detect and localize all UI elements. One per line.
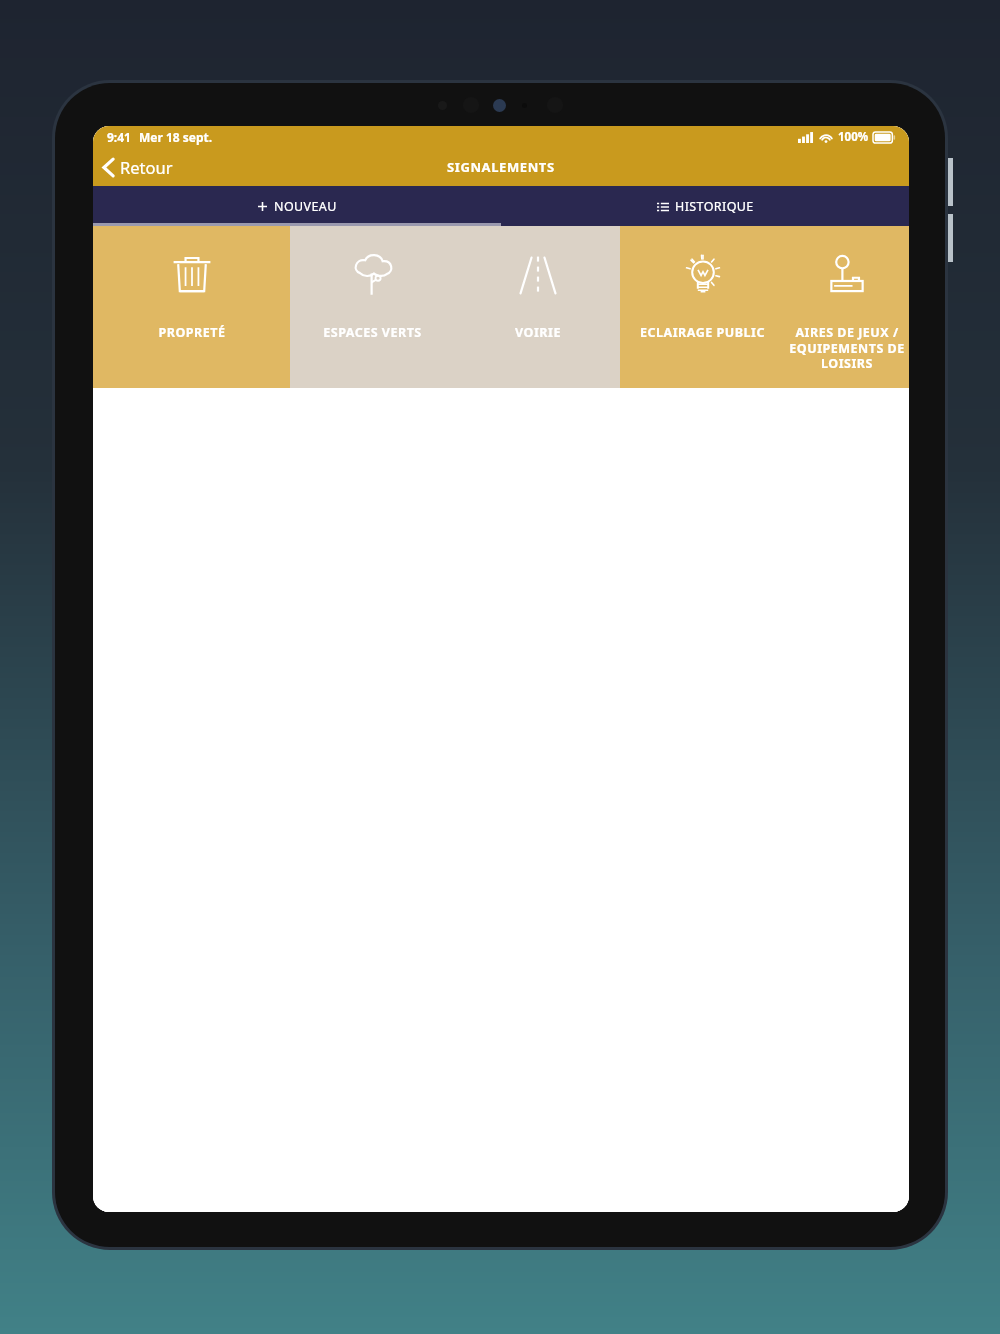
- button[interactable]: Voirie: [455, 226, 620, 388]
- button[interactable]: Espaces verts: [290, 226, 455, 388]
- staticText: 9:41: [107, 129, 131, 145]
- staticText: ESPACES VERTS: [323, 324, 422, 341]
- other: Aires de jeux: [824, 252, 870, 298]
- staticText: NOUVEAU: [274, 198, 337, 215]
- other: Voirie: [515, 252, 561, 298]
- button[interactable]: Propreté: [93, 226, 290, 388]
- button[interactable]: HISTORIQUE: [501, 186, 909, 226]
- staticText: Retour: [120, 156, 173, 178]
- staticText: ECLAIRAGE PUBLIC: [640, 324, 765, 341]
- staticText: HISTORIQUE: [675, 198, 754, 215]
- staticText: 100%: [838, 129, 869, 145]
- button[interactable]: NOUVEAU: [93, 186, 501, 226]
- staticText: VOIRIE: [515, 324, 561, 341]
- button[interactable]: Retour: [93, 152, 185, 182]
- staticText: PROPRETÉ: [158, 324, 226, 341]
- staticText: AIRES DE JEUX / EQUIPEMENTS DE LOISIRS: [789, 324, 905, 371]
- other: Propreté: [169, 252, 215, 298]
- button[interactable]: Eclairage public: [620, 226, 784, 388]
- other: Espaces verts: [350, 252, 396, 298]
- other: Eclairage public: [680, 252, 726, 298]
- staticText: SIGNALEMENTS: [447, 158, 555, 176]
- staticText: Mer 18 sept.: [139, 129, 213, 145]
- button[interactable]: Aires de jeux: [784, 226, 909, 388]
